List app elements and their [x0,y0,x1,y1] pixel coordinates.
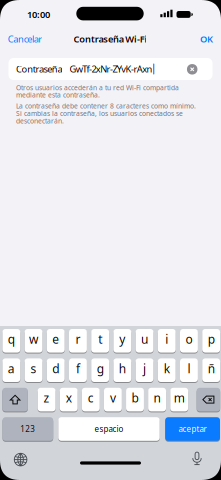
staticText: e [52,331,59,347]
button[interactable]: v [104,387,122,412]
button[interactable]: g [91,358,109,382]
staticText: 123 [20,424,35,434]
staticText: La contraseña debe contener 8 caracteres… [16,101,196,110]
staticText: w [29,331,38,347]
staticText: z [44,390,50,406]
button[interactable]: 123 [2,417,53,441]
button[interactable]: n [148,387,166,412]
staticText: a [8,360,15,376]
staticText: g [97,360,104,376]
staticText: c [88,390,94,406]
button[interactable]: k [158,358,176,382]
button[interactable]: q [2,328,20,353]
button[interactable]: o [180,328,198,353]
staticText: x [66,390,72,406]
staticText: q [8,331,15,347]
staticText: p [208,331,215,347]
staticText: s [30,360,36,376]
button[interactable]: f [69,358,87,382]
button[interactable]: d [47,358,65,382]
button[interactable]: Borrar [197,387,220,412]
staticText: u [141,331,148,347]
button[interactable]: z [38,387,56,412]
button[interactable]: OK [200,33,213,45]
button[interactable]: Cambiar teclado [14,453,28,467]
staticText: n [154,390,161,406]
button[interactable]: s [25,358,42,382]
button[interactable]: Dictado [191,451,203,466]
button[interactable]: p [202,328,220,353]
staticText: Si cambias la contraseña, los usuarios c… [16,109,183,118]
button[interactable]: m [170,387,188,412]
button[interactable]: e [47,328,65,353]
staticText: d [52,360,59,376]
staticText: m [174,390,185,406]
button[interactable]: w [25,328,42,353]
button[interactable]: i [158,328,176,353]
staticText: i [165,331,168,347]
button[interactable]: j [136,358,153,382]
staticText: Contraseña Wi-Fi [73,33,147,45]
button[interactable]: r [69,328,87,353]
staticText: Cancelar [8,33,42,45]
staticText: r [75,331,80,347]
button[interactable]: aceptar [165,417,220,441]
button[interactable]: Borrar texto [187,64,197,74]
button[interactable]: t [91,328,109,353]
staticText: Contraseña [16,63,62,75]
staticText: h [119,360,126,376]
staticText: l [187,360,190,376]
staticText: espacio [94,424,123,434]
staticText: o [185,331,192,347]
button[interactable]: c [82,387,100,412]
staticText: k [164,360,170,376]
staticText: y [119,331,125,347]
button[interactable]: h [113,358,131,382]
button[interactable]: l [180,358,198,382]
staticText: GwTf-2xNr-ZYvK-rAxn [69,63,153,75]
staticText: OK [200,33,213,45]
button[interactable]: a [2,358,20,382]
button[interactable]: x [60,387,78,412]
button[interactable]: espacio [58,417,160,441]
button[interactable]: u [136,328,153,353]
button[interactable]: b [126,387,144,412]
staticText: 10:00 [27,8,50,21]
staticText: b [131,390,138,406]
button[interactable]: ñ [202,358,220,382]
staticText: t [98,331,102,347]
button[interactable]: y [113,328,131,353]
staticText: mediante esta contraseña. [16,91,100,99]
staticText: desconectarán. [16,117,64,125]
staticText: f [76,360,80,376]
staticText: ñ [208,360,215,376]
staticText: Otros usuarios accederán a tu red Wi-Fi … [16,83,179,92]
staticText: j [143,360,146,376]
staticText: v [110,390,116,406]
button[interactable]: Mayúsculas [2,387,28,412]
button[interactable]: Cancelar [8,33,42,45]
staticText: aceptar [179,424,207,434]
